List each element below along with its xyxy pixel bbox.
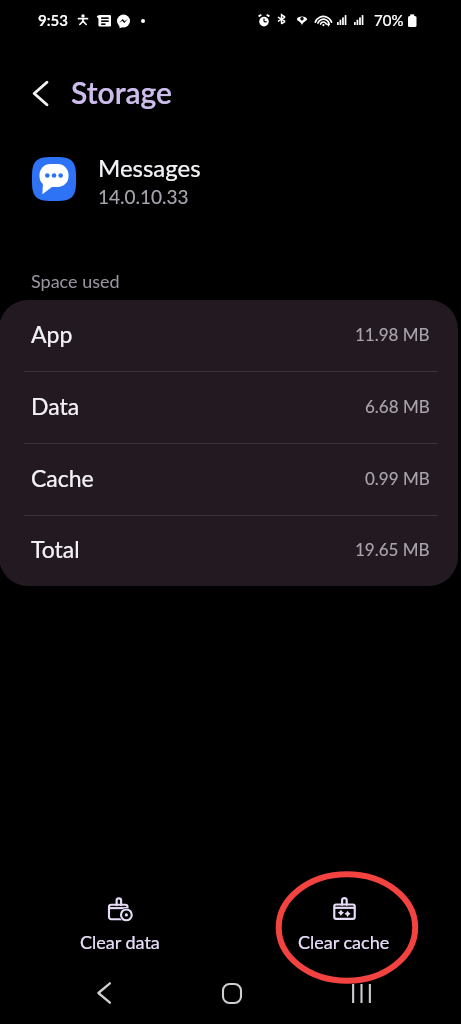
button[interactable]: Clear cache [266, 884, 421, 960]
staticText: 14.0.10.33 [98, 185, 189, 208]
button[interactable]: Home [209, 970, 255, 1016]
staticText: Clear data [80, 931, 160, 953]
button[interactable]: App [0, 300, 458, 372]
button[interactable]: Cache [0, 444, 458, 516]
staticText: Total [31, 535, 80, 563]
staticText: 6.68 MB [365, 396, 430, 416]
button[interactable]: Navigate up [12, 65, 68, 121]
staticText: Messages [98, 153, 201, 182]
button[interactable]: Back [81, 970, 127, 1016]
staticText: Data [31, 392, 80, 420]
staticText: Space used [31, 270, 120, 292]
staticText: 19.65 MB [355, 539, 430, 559]
button[interactable]: Data [0, 372, 458, 444]
button[interactable]: Clear data [42, 884, 197, 960]
staticText: Storage [71, 74, 173, 110]
staticText: Clear cache [298, 931, 390, 953]
staticText: 11.98 MB [355, 324, 430, 344]
staticText: 70% [374, 11, 404, 29]
button[interactable]: Recent apps [338, 970, 384, 1016]
button[interactable]: Total [0, 516, 458, 586]
staticText: 9:53 [38, 11, 68, 29]
staticText: App [31, 320, 73, 348]
staticText: 0.99 MB [365, 468, 430, 488]
staticText: Cache [31, 464, 94, 492]
